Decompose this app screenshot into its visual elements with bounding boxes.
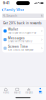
button[interactable]: Screen Time	[2, 44, 44, 52]
button[interactable]: Messages	[2, 35, 44, 44]
staticText: Wallet	[14, 91, 21, 94]
staticText: Tap to pay with Apple Pay	[8, 31, 36, 34]
button[interactable]: Me	[34, 88, 46, 94]
button[interactable]: Wallet	[2, 27, 44, 35]
button[interactable]: Insights	[23, 88, 34, 94]
staticText: Wallet	[8, 28, 18, 31]
staticText: Search	[6, 14, 17, 18]
button[interactable]: Home	[0, 88, 11, 94]
staticText: Get 20% back in rewards	[3, 21, 42, 25]
staticText: Family Wise	[4, 8, 24, 12]
staticText: 9:41	[3, 1, 9, 5]
staticText: Home	[3, 91, 9, 94]
staticText: Messages	[8, 36, 25, 40]
button[interactable]: Search	[2, 13, 44, 18]
button[interactable]: Wallet	[11, 88, 23, 94]
staticText: Set limits for everyone	[8, 49, 33, 51]
staticText: Insights	[25, 91, 33, 94]
staticText: Me	[39, 91, 42, 94]
button[interactable]: Family Wise	[2, 7, 24, 13]
staticText: Share with the family	[8, 40, 32, 43]
staticText: Screen Time	[8, 45, 28, 48]
